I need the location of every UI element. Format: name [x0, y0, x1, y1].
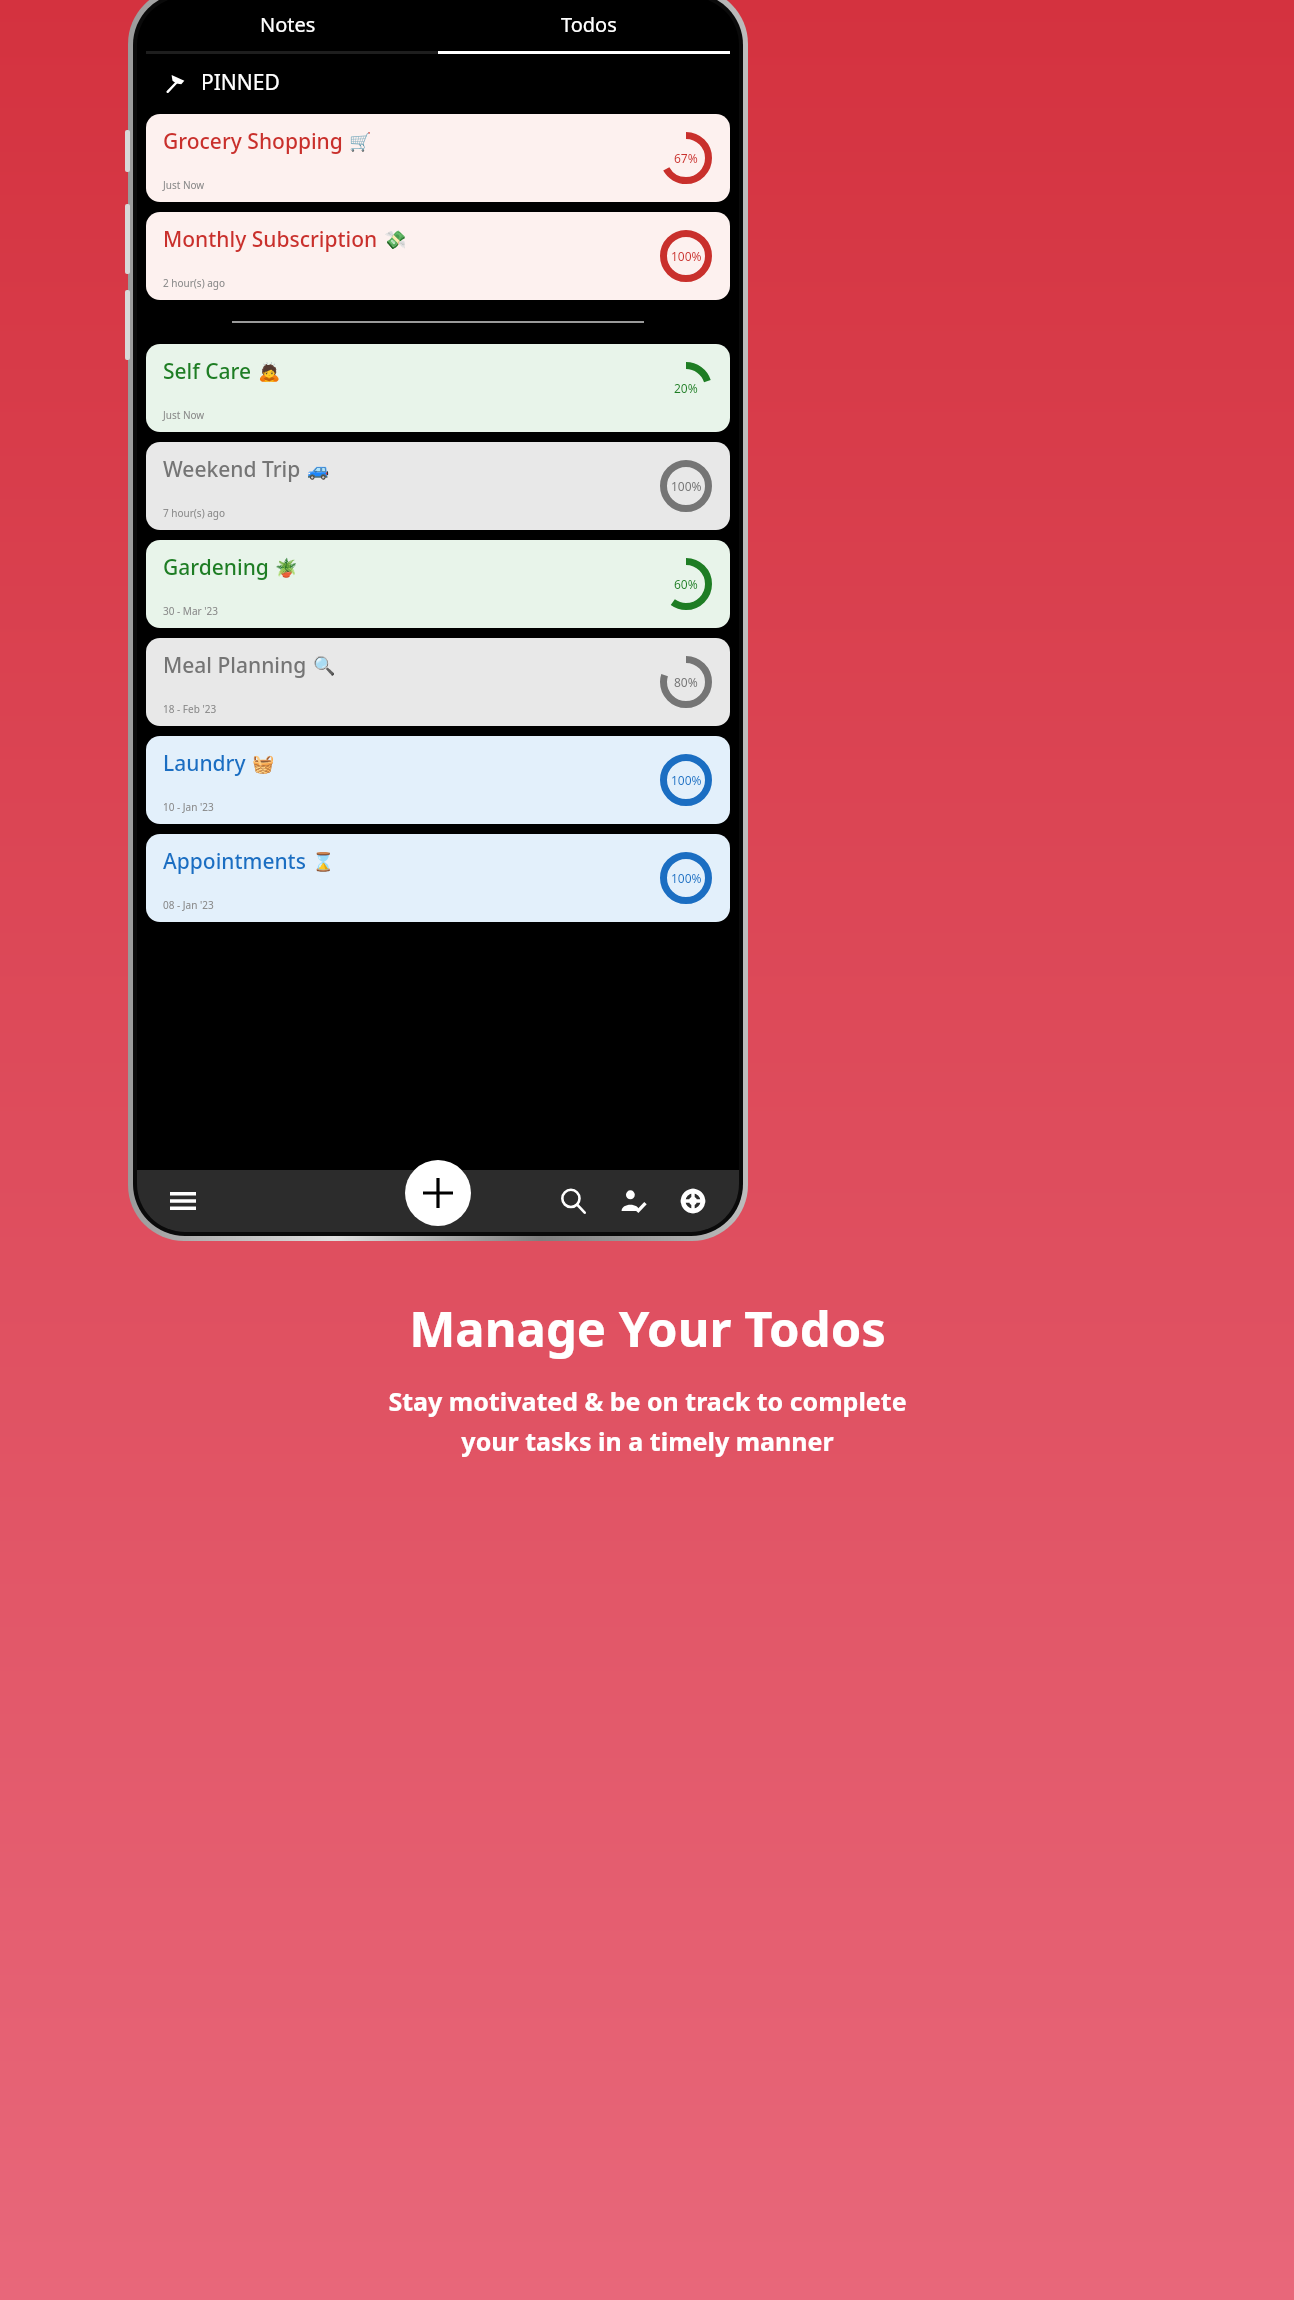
staticText: 30 - Mar '23: [163, 604, 218, 618]
staticText: 18 - Feb '23: [163, 702, 217, 716]
staticText: 80%: [674, 674, 698, 690]
button[interactable]: Appointments: [146, 834, 730, 922]
staticText: Just Now: [163, 408, 205, 422]
staticText: Laundry: [163, 749, 246, 778]
button[interactable]: Meal Planning: [146, 638, 730, 726]
button[interactable]: Search: [549, 1177, 597, 1225]
staticText: 🛒: [349, 131, 372, 152]
staticText: 🙇: [258, 361, 281, 382]
staticText: 🚙: [307, 459, 330, 480]
staticText: 60%: [674, 576, 698, 592]
staticText: 10 - Jan '23: [163, 800, 214, 814]
staticText: your tasks in a timely manner: [461, 1424, 834, 1458]
staticText: Grocery Shopping: [163, 127, 343, 156]
staticText: 🧺: [252, 753, 275, 774]
button[interactable]: Grocery Shopping: [146, 114, 730, 202]
staticText: Manage Your Todos: [409, 1295, 886, 1362]
staticText: Self Care: [163, 357, 252, 386]
button[interactable]: Self Care: [146, 344, 730, 432]
staticText: 08 - Jan '23: [163, 898, 214, 912]
staticText: ⌛: [312, 851, 335, 872]
button[interactable]: Monthly Subscription: [146, 212, 730, 300]
staticText: Weekend Trip: [163, 455, 301, 484]
button[interactable]: Weekend Trip: [146, 442, 730, 530]
staticText: Appointments: [163, 847, 306, 876]
staticText: 2 hour(s) ago: [163, 276, 226, 290]
button[interactable]: Laundry: [146, 736, 730, 824]
staticText: Stay motivated & be on track to complete: [388, 1384, 907, 1418]
staticText: 100%: [671, 870, 702, 886]
staticText: 100%: [671, 772, 702, 788]
staticText: 🪴: [275, 557, 298, 578]
staticText: Just Now: [163, 178, 205, 192]
button[interactable]: Menu: [159, 1177, 207, 1225]
staticText: Gardening: [163, 553, 269, 582]
staticText: PINNED: [201, 68, 280, 97]
staticText: Notes: [260, 11, 316, 38]
button[interactable]: Gardening: [146, 540, 730, 628]
button[interactable]: Notes: [137, 0, 438, 51]
staticText: 67%: [674, 150, 698, 166]
staticText: Todos: [561, 11, 617, 38]
staticText: 💸: [384, 229, 407, 250]
staticText: 🔍: [313, 655, 336, 676]
staticText: Meal Planning: [163, 651, 307, 680]
staticText: 7 hour(s) ago: [163, 506, 226, 520]
staticText: 100%: [671, 478, 702, 494]
button[interactable]: Add: [405, 1160, 471, 1226]
button[interactable]: Edit profile: [609, 1177, 657, 1225]
staticText: Monthly Subscription: [163, 225, 378, 254]
button[interactable]: Help: [669, 1177, 717, 1225]
staticText: 20%: [674, 380, 698, 396]
staticText: 100%: [671, 248, 702, 264]
button[interactable]: Todos: [438, 0, 739, 51]
